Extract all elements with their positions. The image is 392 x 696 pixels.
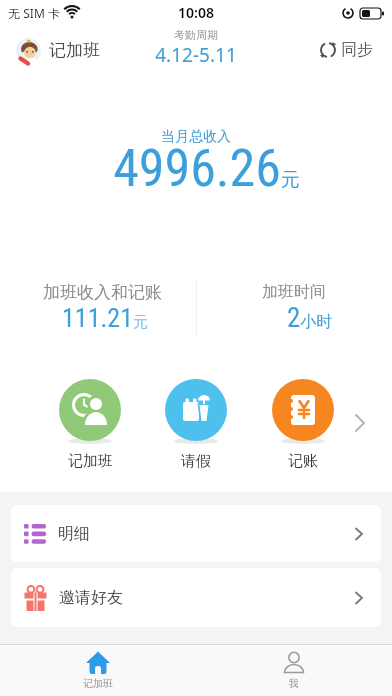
button[interactable]: 记加班 xyxy=(0,645,196,696)
staticText: 加班时间 xyxy=(262,282,326,302)
button[interactable]: 邀请好友 xyxy=(11,568,381,627)
staticText: 同步 xyxy=(341,40,373,60)
staticText: 记账 xyxy=(288,452,318,471)
staticText: 加班收入和记账 xyxy=(43,282,162,303)
button[interactable]: 记加班 xyxy=(16,38,100,63)
staticText: 2小时 xyxy=(287,302,333,334)
staticText: 我 xyxy=(289,677,299,690)
staticText: 邀请好友 xyxy=(59,588,123,608)
button[interactable]: 同步 xyxy=(319,40,373,60)
staticText: 111.21元 xyxy=(62,303,149,333)
staticText: 请假 xyxy=(181,452,211,471)
button[interactable] xyxy=(165,379,227,441)
staticText: 4.12-5.11 xyxy=(155,42,237,68)
button[interactable]: 明细 xyxy=(11,505,381,562)
staticText: 记加班 xyxy=(68,452,113,471)
staticText: 10:08 xyxy=(178,3,214,22)
button[interactable]: 我 xyxy=(196,645,392,696)
button[interactable] xyxy=(59,379,121,441)
button[interactable] xyxy=(272,379,334,441)
staticText: 4996.26元 xyxy=(113,138,300,199)
staticText: 考勤周期 xyxy=(174,28,218,42)
staticText: 无 SIM 卡 xyxy=(8,5,60,21)
staticText: 记加班 xyxy=(83,677,113,690)
staticText: 记加班 xyxy=(49,40,100,61)
staticText: 当月总收入 xyxy=(161,128,231,146)
staticText: 明细 xyxy=(58,524,90,544)
